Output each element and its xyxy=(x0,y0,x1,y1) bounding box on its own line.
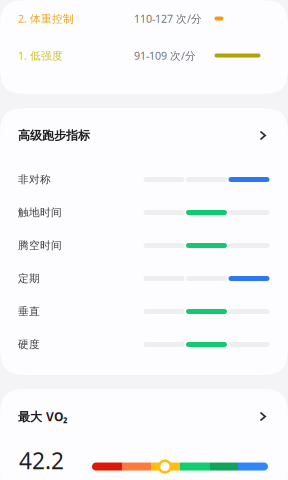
staticText: 1. 低强度 xyxy=(18,48,63,63)
staticText: 定期 xyxy=(18,272,40,285)
button[interactable]: 最大 VO₂ xyxy=(0,389,288,444)
staticText: 垂直 xyxy=(18,305,40,318)
staticText: 腾空时间 xyxy=(18,239,62,252)
button[interactable]: 垂直 xyxy=(0,295,288,328)
button[interactable]: 触地时间 xyxy=(0,196,288,229)
staticText: 非对称 xyxy=(18,173,51,186)
staticText: 最大 VO₂ xyxy=(18,408,68,424)
staticText: 硬度 xyxy=(18,338,40,351)
button[interactable]: 1. 低强度 xyxy=(0,37,288,74)
button[interactable]: 2. 体重控制 xyxy=(0,0,288,37)
staticText: 触地时间 xyxy=(18,206,62,219)
button[interactable]: 腾空时间 xyxy=(0,229,288,262)
button[interactable]: 硬度 xyxy=(0,328,288,361)
staticText: 2. 体重控制 xyxy=(18,11,74,26)
staticText: 高级跑步指标 xyxy=(18,128,90,143)
button[interactable]: 高级跑步指标 xyxy=(0,108,288,163)
staticText: 110-127 次/分 xyxy=(134,11,202,26)
button[interactable]: 非对称 xyxy=(0,163,288,196)
staticText: 91-109 次/分 xyxy=(134,48,196,63)
button[interactable]: 定期 xyxy=(0,262,288,295)
staticText: 42.2 xyxy=(19,445,64,475)
